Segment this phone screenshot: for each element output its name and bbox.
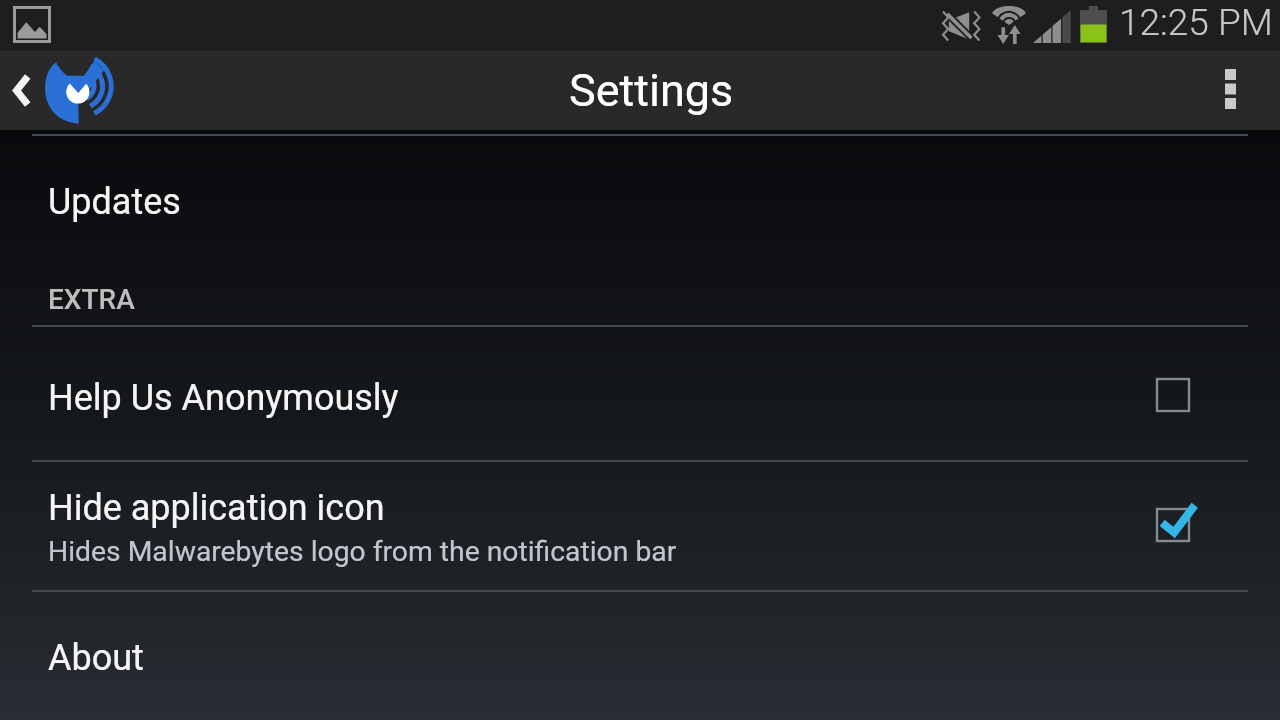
staticText: Hide application icon (48, 487, 385, 529)
staticText: 12:25 PM (1119, 1, 1273, 44)
button[interactable]: Unchecked checkbox (1142, 364, 1204, 426)
staticText: Settings (569, 64, 734, 117)
button[interactable]: Checked checkbox (1142, 494, 1204, 556)
staticText: EXTRA (48, 283, 135, 316)
staticText: About (48, 637, 144, 679)
button[interactable]: Hide application icon (0, 462, 1280, 590)
staticText: Updates (48, 181, 181, 223)
staticText: Help Us Anonymously (48, 377, 399, 419)
button[interactable]: More options (1184, 51, 1280, 130)
button[interactable]: Help Us Anonymously (0, 327, 1280, 460)
button[interactable]: About (0, 592, 1280, 720)
staticText: Hides Malwarebytes logo from the notific… (48, 535, 677, 568)
button[interactable]: Updates (0, 136, 1280, 268)
button[interactable]: Navigate up (0, 51, 126, 130)
